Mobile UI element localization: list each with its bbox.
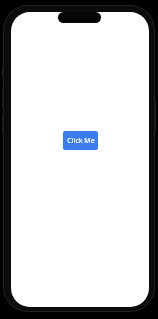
button[interactable]: Click Me xyxy=(63,131,98,150)
staticText: Click Me xyxy=(67,136,95,146)
